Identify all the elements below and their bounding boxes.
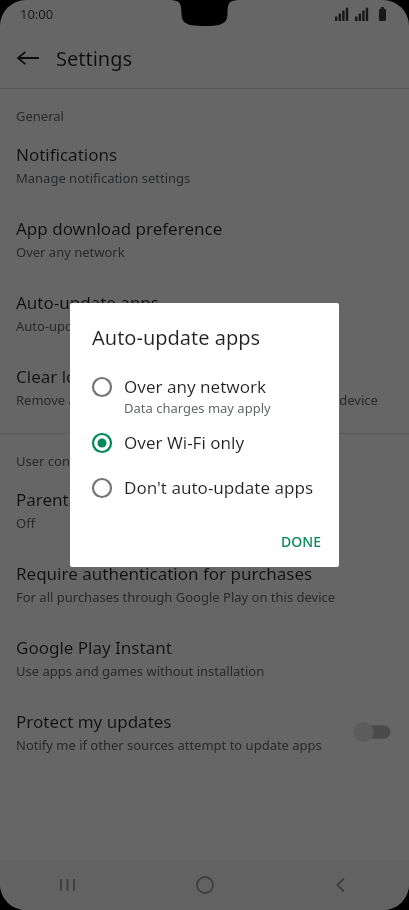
staticText: Over any network (16, 243, 125, 261)
button[interactable]: Auto-update apps (0, 277, 409, 351)
button[interactable]: Over any network (70, 368, 339, 424)
staticText: Google Play Instant (16, 636, 172, 659)
staticText: For all purchases through Google Play on… (16, 588, 336, 606)
button[interactable]: Recents (0, 860, 137, 910)
staticText: Use apps and games without installation (16, 662, 265, 680)
button[interactable]: Parental controls (0, 476, 409, 548)
staticText: Protect my updates (16, 710, 172, 733)
button[interactable]: App download preference (0, 203, 409, 277)
staticText: Notifications (16, 143, 118, 166)
button[interactable]: Back (273, 860, 409, 910)
button[interactable]: Home (137, 860, 273, 910)
staticText: 10:00 (20, 5, 54, 23)
staticText: Auto-update apps (16, 291, 159, 314)
button[interactable]: Clear local search history (0, 351, 409, 425)
button[interactable]: Google Play Instant (0, 622, 409, 696)
staticText: Remove all the searches you have perform… (16, 391, 378, 409)
staticText: App download preference (16, 217, 223, 240)
button[interactable]: Notifications (0, 131, 409, 203)
button[interactable]: Require authentication for purchases (0, 548, 409, 622)
staticText: Over Wi-Fi only (124, 431, 245, 454)
staticText: Don't auto-update apps (124, 476, 314, 499)
staticText: Over any network (124, 375, 267, 398)
staticText: Notify me if other sources attempt to up… (16, 736, 322, 754)
staticText: Auto-update apps over Wi-Fi only (16, 317, 218, 335)
staticText: Parental controls (16, 488, 152, 511)
staticText: DONE (281, 532, 321, 551)
staticText: Manage notification settings (16, 169, 191, 187)
staticText: Settings (56, 45, 133, 72)
button[interactable]: Protect my updates (0, 696, 409, 770)
button[interactable]: Back (0, 30, 56, 86)
staticText: Auto-update apps (92, 324, 261, 351)
staticText: Off (16, 514, 36, 532)
button[interactable]: Don't auto-update apps (70, 469, 339, 506)
staticText: Clear local search history (16, 365, 216, 388)
button[interactable]: Over Wi-Fi only (70, 424, 339, 461)
staticText: Data charges may apply (124, 399, 271, 417)
staticText: General (16, 107, 64, 125)
staticText: Require authentication for purchases (16, 562, 313, 585)
staticText: User controls (16, 452, 98, 470)
button[interactable]: DONE (263, 524, 339, 559)
